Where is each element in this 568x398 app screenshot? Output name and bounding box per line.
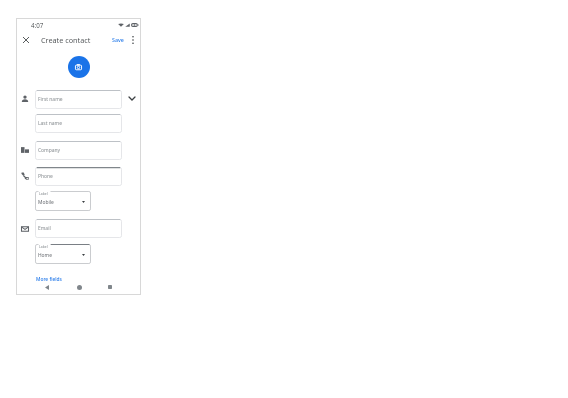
staticText: Create contact (41, 35, 91, 45)
staticText: Email (38, 225, 51, 232)
button[interactable]: More options (126, 33, 139, 46)
staticText: Company (38, 147, 61, 154)
staticText: Save (112, 36, 124, 43)
button[interactable]: Label (35, 191, 91, 211)
button[interactable]: Save (110, 35, 126, 44)
staticText: First name (38, 96, 63, 103)
staticText: Phone (38, 173, 53, 180)
staticText: Label (39, 244, 48, 249)
staticText: Home (38, 252, 52, 259)
staticText: Mobile (38, 199, 54, 206)
button[interactable]: More fields (34, 275, 64, 284)
button[interactable]: Last name (35, 114, 122, 133)
button[interactable]: Email (35, 219, 122, 238)
button[interactable]: Back (41, 281, 53, 293)
button[interactable]: Expand name fields (124, 90, 140, 106)
staticText: More fields (36, 276, 62, 283)
staticText: Label (39, 191, 48, 196)
staticText: 4:07 (31, 21, 44, 29)
button[interactable]: First name (35, 90, 122, 109)
button[interactable]: Company (35, 141, 122, 160)
button[interactable]: Close (19, 33, 33, 47)
button[interactable]: Recents (104, 281, 116, 293)
button[interactable]: Home (73, 281, 85, 293)
staticText: Last name (38, 120, 63, 127)
button[interactable]: Label (35, 244, 91, 264)
button[interactable]: Phone (35, 167, 122, 186)
button[interactable]: Add photo (68, 56, 90, 78)
